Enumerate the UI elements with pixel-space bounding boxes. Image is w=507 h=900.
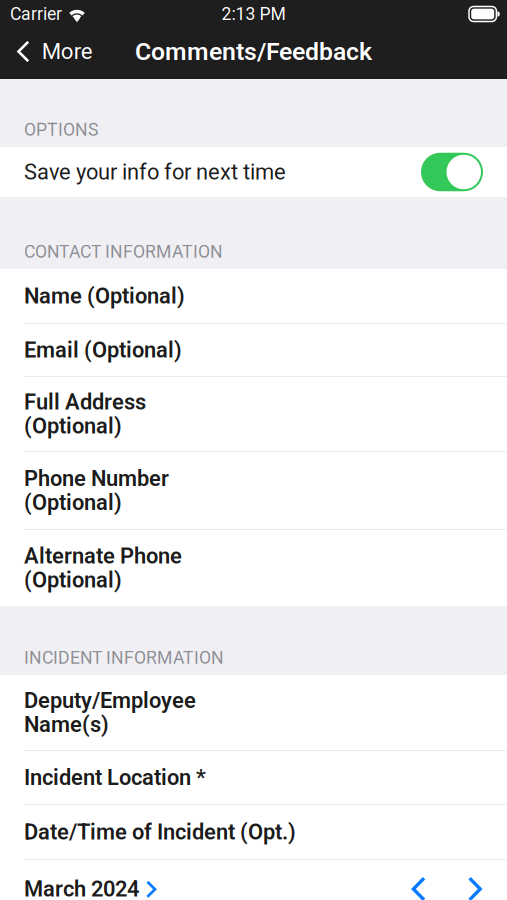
staticText: Alternate Phone (24, 543, 182, 569)
staticText: More (42, 38, 93, 65)
staticText: 2:13 PM (221, 4, 285, 24)
staticText: Save your info for next time (24, 159, 286, 185)
staticText: Date/Time of Incident (Opt.) (24, 819, 296, 845)
button[interactable]: Next month (447, 860, 499, 900)
button[interactable]: Name (Optional) (0, 269, 507, 323)
button[interactable]: Previous month (395, 860, 447, 900)
staticText: OPTIONS (24, 119, 98, 140)
staticText: Phone Number (24, 466, 169, 491)
button[interactable]: March 2024 (0, 860, 156, 900)
staticText: Carrier (10, 4, 62, 24)
button[interactable]: More (0, 30, 107, 73)
button[interactable]: Alternate Phone (0, 530, 507, 606)
staticText: Incident Location * (24, 765, 206, 790)
button[interactable]: Date/Time of Incident (Opt.) (0, 805, 507, 859)
staticText: (Optional) (24, 567, 122, 593)
button[interactable]: Phone Number (0, 452, 507, 529)
staticText: Email (Optional) (24, 337, 182, 363)
staticText: March 2024 (24, 876, 139, 900)
button[interactable]: Incident Location * (0, 751, 507, 804)
button[interactable]: Deputy/Employee (0, 675, 507, 750)
staticText: (Optional) (24, 490, 122, 515)
staticText: Name(s) (24, 712, 109, 737)
staticText: CONTACT INFORMATION (24, 241, 223, 262)
staticText: Name (Optional) (24, 283, 185, 309)
staticText: INCIDENT INFORMATION (24, 647, 224, 668)
button[interactable]: Full Address (0, 377, 507, 451)
button[interactable]: Email (Optional) (0, 324, 507, 376)
button[interactable]: Save your info for next time (0, 147, 507, 197)
staticText: Deputy/Employee (24, 688, 196, 713)
staticText: Full Address (24, 389, 146, 415)
staticText: Comments/Feedback (135, 37, 372, 66)
staticText: (Optional) (24, 413, 122, 439)
